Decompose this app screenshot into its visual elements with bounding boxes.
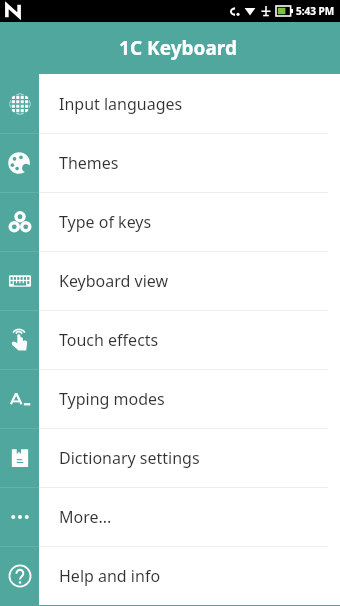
staticText: Themes [59, 152, 119, 174]
button[interactable]: Help and info [0, 546, 340, 605]
button[interactable]: More... [0, 487, 340, 546]
button[interactable]: Themes [0, 133, 340, 192]
button[interactable]: Dictionary settings [0, 428, 340, 487]
button[interactable]: Type of keys [0, 192, 340, 251]
button[interactable]: Input languages [0, 74, 340, 133]
staticText: 5:43 PM [296, 4, 335, 18]
button[interactable]: Typing modes [0, 369, 340, 428]
staticText: Help and info [59, 565, 161, 587]
staticText: More... [59, 506, 112, 528]
button[interactable]: Touch effects [0, 310, 340, 369]
staticText: Dictionary settings [59, 447, 200, 469]
staticText: 1C Keyboard [119, 35, 237, 61]
button[interactable]: Keyboard view [0, 251, 340, 310]
staticText: Type of keys [59, 211, 152, 233]
staticText: Keyboard view [59, 270, 169, 292]
staticText: Touch effects [59, 329, 159, 351]
staticText: Input languages [59, 93, 183, 115]
staticText: Typing modes [59, 388, 165, 410]
